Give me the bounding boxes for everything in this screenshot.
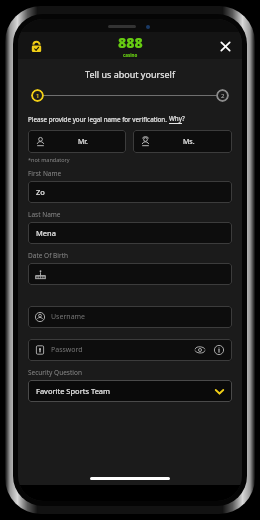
staticText: 888 — [118, 33, 143, 52]
button[interactable]: Mena — [28, 222, 232, 244]
button[interactable]: Ms. — [133, 130, 232, 153]
staticText: casino — [123, 52, 138, 58]
button[interactable]: Close — [214, 35, 236, 57]
staticText: Security Question — [28, 368, 82, 377]
button[interactable]: Date of birth — [28, 263, 232, 285]
button[interactable]: Username — [28, 306, 232, 328]
staticText: Password — [51, 345, 83, 355]
button[interactable]: Password info — [212, 343, 226, 357]
staticText: Zo — [36, 187, 45, 197]
button[interactable]: 2 — [216, 89, 229, 102]
staticText: Ms. — [183, 137, 195, 147]
staticText: Last Name — [28, 210, 61, 219]
staticText: Why? — [169, 114, 185, 123]
staticText: Tell us about yourself — [18, 68, 242, 80]
staticText: Username — [51, 312, 86, 322]
button[interactable]: Why? — [169, 114, 185, 124]
button[interactable]: Zo — [28, 181, 232, 203]
staticText: Date Of Birth — [28, 251, 69, 260]
staticText: Mena — [36, 228, 56, 238]
staticText: Please provide your legal name for verif… — [28, 115, 169, 124]
button[interactable]: 1 — [31, 89, 44, 102]
staticText: *not mandatory — [28, 156, 70, 163]
staticText: Mr. — [78, 137, 88, 147]
staticText: 1 — [36, 92, 40, 100]
button[interactable]: Favorite Sports Team — [28, 380, 232, 402]
staticText: Favorite Sports Team — [36, 386, 111, 396]
button[interactable]: Mr. — [28, 130, 126, 153]
button[interactable]: Show password — [193, 343, 207, 357]
button[interactable]: Secure — [25, 35, 47, 57]
staticText: First Name — [28, 169, 62, 178]
staticText: 2 — [221, 92, 225, 100]
button[interactable]: Password — [28, 339, 232, 361]
